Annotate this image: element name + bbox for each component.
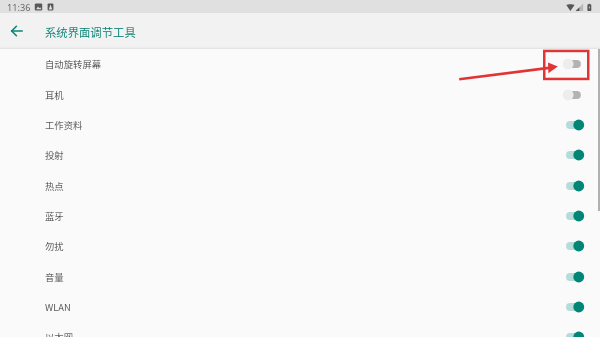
staticText: WLAN: [45, 300, 71, 314]
button[interactable]: 自动旋转屏幕: [0, 49, 600, 79]
staticText: 工作资料: [45, 118, 83, 132]
staticText: 勿扰: [45, 239, 64, 253]
button[interactable]: 耳机 已关闭: [566, 88, 584, 102]
staticText: 蓝牙: [45, 209, 64, 223]
button[interactable]: 蓝牙: [0, 201, 600, 231]
button[interactable]: 工作资料: [0, 110, 600, 140]
button[interactable]: 音量: [0, 262, 600, 292]
staticText: 投射: [45, 148, 64, 162]
button[interactable]: Back: [6, 19, 30, 43]
button[interactable]: 音量 已开启: [566, 270, 584, 284]
staticText: 音量: [45, 270, 64, 284]
staticText: 以太网: [45, 330, 74, 337]
staticText: 自动旋转屏幕: [45, 57, 102, 71]
button[interactable]: 工作资料 已开启: [566, 118, 584, 132]
button[interactable]: 以太网 已开启: [566, 330, 584, 337]
button[interactable]: 投射: [0, 140, 600, 170]
button[interactable]: 蓝牙 已开启: [566, 209, 584, 223]
button[interactable]: WLAN 已开启: [566, 300, 584, 314]
button[interactable]: 投射 已开启: [566, 148, 584, 162]
staticText: 热点: [45, 179, 64, 193]
button[interactable]: 勿扰 已开启: [566, 239, 584, 253]
button[interactable]: 耳机: [0, 80, 600, 110]
staticText: 系统界面调节工具: [45, 24, 136, 40]
button[interactable]: 自动旋转屏幕 已关闭: [566, 57, 584, 71]
button[interactable]: 热点: [0, 171, 600, 201]
button[interactable]: WLAN: [0, 292, 600, 322]
button[interactable]: 以太网: [0, 322, 600, 337]
button[interactable]: 勿扰: [0, 231, 600, 261]
staticText: 耳机: [45, 88, 64, 102]
staticText: 11:36: [7, 1, 31, 14]
button[interactable]: 热点 已开启: [566, 179, 584, 193]
